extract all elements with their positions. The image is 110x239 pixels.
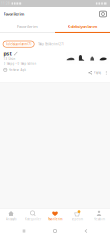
- staticText: 11:28: [1, 2, 10, 5]
- button[interactable]: Daha fazla: [104, 70, 108, 75]
- button[interactable]: Son uygulamalar: [17, 226, 31, 236]
- button[interactable]: Takip Ettiklerim (27): [38, 41, 64, 47]
- button[interactable]: Anasayfa: [0, 209, 22, 223]
- staticText: pst: [3, 50, 11, 57]
- button[interactable]: Paylaş: [88, 71, 101, 75]
- staticText: Favorilerim: [17, 24, 38, 29]
- button[interactable]: Sepetim: [66, 209, 88, 223]
- staticText: Koleksiyonlarım (7): [6, 42, 32, 46]
- staticText: Anasayfa: [6, 217, 16, 221]
- button[interactable]: Geri: [79, 226, 93, 236]
- staticText: Kategoriler: [25, 217, 41, 221]
- button[interactable]: Hesabım: [88, 209, 110, 223]
- staticText: 0 Takipçi • 0 Takip Edilen: [3, 62, 36, 65]
- staticText: Takip Ettiklerim (27): [38, 42, 64, 46]
- button[interactable]: Koleksiyonlarım (7): [3, 41, 34, 47]
- button[interactable]: Düzenle: [14, 51, 18, 56]
- staticText: Herkese Açık: [8, 68, 25, 72]
- button[interactable]: Favorilerim: [0, 21, 55, 32]
- staticText: Favorilerim: [48, 217, 62, 221]
- button[interactable]: Ana ekran: [48, 226, 62, 236]
- staticText: Paylaş: [94, 71, 101, 74]
- staticText: Hesabım: [93, 217, 104, 221]
- staticText: Koleksiyonlarım: [67, 24, 97, 29]
- staticText: Favorilerim: [3, 11, 24, 17]
- button[interactable]: Barkod Tara: [97, 7, 108, 21]
- staticText: 13 Ürün: [3, 57, 15, 61]
- button[interactable]: Favorilerim: [44, 209, 66, 223]
- button[interactable]: Kategoriler: [22, 209, 44, 223]
- button[interactable]: Koleksiyonlarım: [55, 21, 110, 32]
- staticText: Sepetim: [71, 217, 82, 221]
